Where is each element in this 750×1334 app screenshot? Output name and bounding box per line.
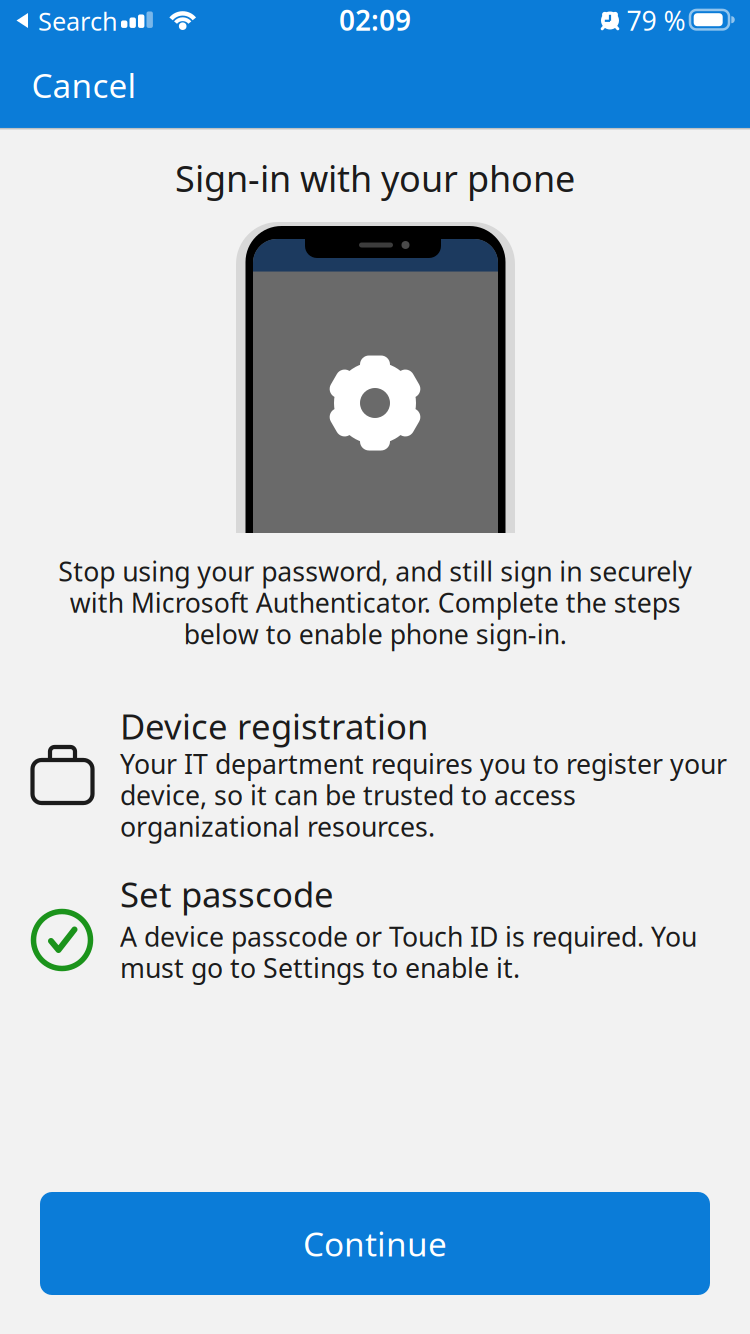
staticText: Device registration bbox=[120, 703, 428, 749]
staticText: Set passcode bbox=[120, 871, 334, 917]
staticText: Stop using your password, and still sign… bbox=[58, 553, 692, 652]
staticText: Cancel bbox=[31, 63, 136, 107]
staticText: 02:09 bbox=[339, 1, 411, 39]
staticText: Search bbox=[38, 4, 118, 38]
staticText: Sign-in with your phone bbox=[175, 154, 575, 202]
staticText: Continue bbox=[303, 1221, 447, 1266]
button[interactable]: Continue bbox=[40, 1192, 710, 1295]
staticText: A device passcode or Touch ID is require… bbox=[120, 919, 697, 985]
staticText: 79 % bbox=[626, 3, 685, 38]
button[interactable]: Cancel bbox=[31, 63, 136, 107]
staticText: Your IT department requires you to regis… bbox=[120, 746, 727, 844]
